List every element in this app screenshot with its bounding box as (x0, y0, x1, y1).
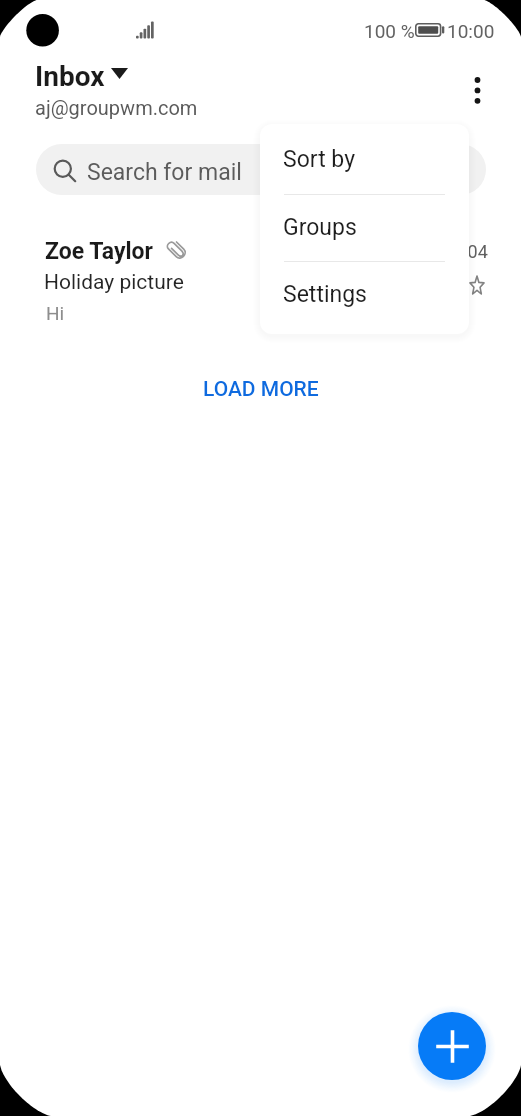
staticText: 10:00 (447, 20, 495, 42)
staticText: Groups (283, 214, 357, 241)
staticText: aj@groupwm.com (35, 96, 198, 119)
staticText: Settings (283, 281, 367, 308)
staticText: Inbox (35, 60, 105, 93)
button[interactable]: More options (453, 66, 501, 114)
staticText: Holiday picture (44, 270, 184, 295)
button[interactable]: Settings (260, 261, 469, 328)
staticText: 10:04 (443, 241, 488, 262)
staticText: Search for mail (87, 159, 242, 186)
button[interactable]: Zoe Taylor (0, 222, 521, 334)
staticText: 100 % (364, 20, 415, 42)
staticText: Sort by (283, 146, 356, 173)
staticText: LOAD MORE (203, 377, 319, 402)
button[interactable]: LOAD MORE (181, 367, 341, 412)
button[interactable]: Sort by (260, 124, 469, 194)
staticText: Hi (46, 302, 65, 324)
button[interactable]: Search for mail (36, 144, 486, 195)
button[interactable]: Compose new email (418, 1012, 486, 1080)
button[interactable]: Mark as favourite (457, 263, 497, 303)
staticText: Zoe Taylor (45, 238, 154, 265)
button[interactable]: Groups (260, 194, 469, 261)
button[interactable]: Inbox (32, 54, 132, 90)
